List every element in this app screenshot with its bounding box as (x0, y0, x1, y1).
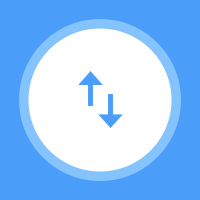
button[interactable]: Transfer (19, 19, 181, 181)
